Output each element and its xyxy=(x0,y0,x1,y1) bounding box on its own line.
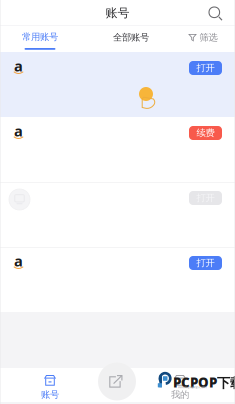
staticText: 打开 xyxy=(196,62,214,74)
staticText: 账号 xyxy=(105,6,129,20)
staticText: 筛选 xyxy=(199,32,217,43)
staticText: 全部账号 xyxy=(113,32,149,43)
staticText: a xyxy=(14,56,23,75)
staticText: 打开 xyxy=(196,192,214,204)
button[interactable]: 全部账号 xyxy=(96,26,166,52)
button[interactable]: 筛选 xyxy=(175,26,231,52)
button[interactable]: 我的 xyxy=(150,373,210,401)
button[interactable]: 账号 xyxy=(20,373,80,401)
staticText: www.pcpop.com xyxy=(178,384,207,389)
staticText: PCPOP下载 xyxy=(173,373,235,391)
staticText: 我的 xyxy=(171,389,189,400)
staticText: 常用账号 xyxy=(22,31,58,43)
button[interactable]: a xyxy=(0,117,235,182)
button[interactable]: a xyxy=(0,52,235,117)
button[interactable]: 常用账号 xyxy=(1,26,79,52)
staticText: a xyxy=(14,121,23,140)
staticText: 续费 xyxy=(196,127,214,139)
button[interactable]: 打开 xyxy=(0,182,235,247)
staticText: 账号 xyxy=(41,389,59,400)
button[interactable]: 扫码 xyxy=(98,362,136,400)
staticText: 打开 xyxy=(196,257,214,269)
button[interactable]: 搜索 xyxy=(204,2,228,26)
button[interactable]: a xyxy=(0,247,235,312)
staticText: a xyxy=(14,251,23,270)
